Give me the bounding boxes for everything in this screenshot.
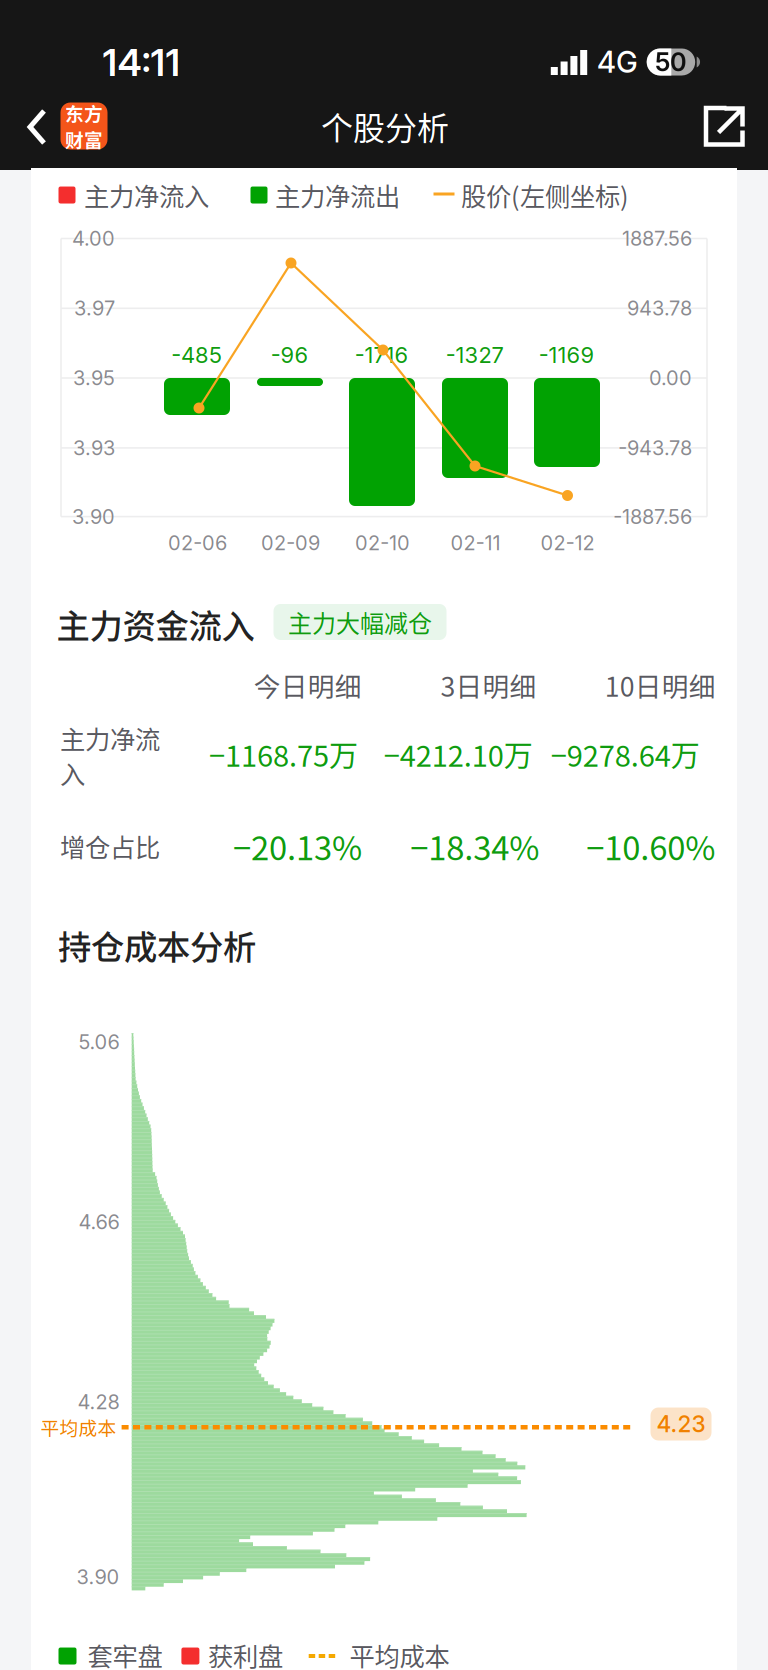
staticText: 主力资金流入 — [56, 600, 254, 648]
staticText: 0.00 — [649, 366, 692, 390]
staticText: 4.23 — [656, 1410, 705, 1438]
staticText: 个股分析 — [321, 103, 449, 149]
button[interactable]: 东方财富 — [60, 102, 107, 149]
staticText: 14:11 — [102, 40, 180, 85]
staticText: -943.78 — [618, 436, 692, 460]
staticText: 3.93 — [73, 436, 115, 460]
staticText: 3日明细 — [440, 666, 536, 704]
staticText: 入 — [60, 755, 85, 791]
staticText: 主力净流 — [60, 720, 160, 756]
staticText: −4212.10万 — [384, 733, 533, 775]
staticText: 主力大幅减仓 — [288, 605, 432, 639]
staticText: 1887.56 — [622, 226, 692, 251]
staticText: 平均成本 — [41, 1413, 117, 1440]
staticText: 02-09 — [261, 531, 320, 555]
staticText: 今日明细 — [254, 666, 362, 704]
staticText: 获利盘 — [208, 1637, 283, 1670]
staticText: 股价(左侧坐标) — [461, 177, 629, 213]
staticText: 02-10 — [355, 531, 410, 555]
staticText: 02-06 — [168, 531, 227, 555]
staticText: 50 — [655, 47, 687, 77]
staticText: -1169 — [538, 342, 594, 368]
staticText: 3.97 — [74, 296, 115, 320]
staticText: 4.28 — [77, 1390, 119, 1414]
staticText: 02-12 — [540, 531, 594, 555]
staticText: 增仓占比 — [60, 828, 160, 864]
staticText: -485 — [171, 342, 222, 368]
staticText: 持仓成本分析 — [58, 921, 256, 969]
staticText: −20.13% — [233, 822, 362, 870]
staticText: 套牢盘 — [88, 1637, 163, 1670]
staticText: 东方 — [65, 99, 103, 126]
button[interactable]: Share — [693, 88, 755, 164]
staticText: −9278.64万 — [551, 733, 700, 775]
staticText: 10日明细 — [605, 666, 716, 704]
staticText: 3.90 — [72, 504, 115, 529]
staticText: 4.00 — [72, 226, 115, 251]
staticText: 943.78 — [627, 296, 692, 320]
staticText: -1887.56 — [613, 504, 692, 529]
staticText: 4.66 — [78, 1210, 119, 1234]
staticText: -1716 — [354, 342, 408, 368]
staticText: 主力净流入 — [84, 177, 209, 213]
staticText: −1168.75万 — [209, 733, 358, 775]
button[interactable]: Back — [10, 89, 64, 165]
staticText: -1327 — [445, 342, 503, 368]
staticText: 主力净流出 — [275, 177, 400, 213]
staticText: −18.34% — [410, 822, 539, 870]
staticText: 5.06 — [78, 1030, 119, 1054]
staticText: 4G — [597, 44, 638, 80]
staticText: 3.95 — [73, 366, 115, 390]
staticText: 3.90 — [76, 1565, 119, 1589]
staticText: 02-11 — [450, 531, 500, 555]
staticText: 平均成本 — [350, 1637, 450, 1670]
staticText: -96 — [270, 342, 308, 368]
staticText: 财富 — [65, 125, 103, 152]
staticText: −10.60% — [586, 822, 715, 870]
